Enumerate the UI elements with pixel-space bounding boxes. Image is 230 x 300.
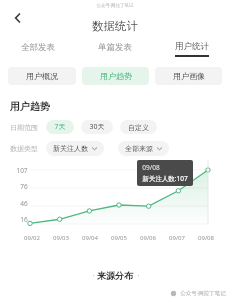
staticText: 全部来源: [125, 144, 153, 153]
button[interactable]: Back: [2, 2, 34, 34]
staticText: 日期范围: [10, 123, 38, 132]
staticText: 新关注人数:107: [142, 174, 188, 183]
button[interactable]: 全部来源: [118, 141, 169, 156]
staticText: ·: [90, 270, 97, 281]
staticText: 09/03: [53, 234, 69, 242]
staticText: 公众号·网拉丁笔记: [96, 2, 134, 8]
staticText: 用户画像: [173, 71, 205, 81]
button[interactable]: 用户趋势: [82, 67, 149, 85]
button[interactable]: 用户统计: [153, 36, 230, 62]
staticText: 16: [20, 215, 28, 224]
staticText: 用户概况: [26, 71, 58, 81]
staticText: 单篇发表: [98, 42, 132, 53]
button[interactable]: 自定义: [120, 120, 157, 134]
button[interactable]: 用户画像: [155, 67, 222, 85]
staticText: 用户统计: [175, 41, 209, 52]
staticText: 107: [16, 166, 28, 175]
staticText: 数据类型: [10, 144, 38, 153]
staticText: 09/04: [82, 234, 98, 242]
staticText: 公众号·网拉丁笔记: [180, 289, 226, 297]
button[interactable]: 全部发表: [0, 36, 76, 62]
staticText: 09/06: [140, 234, 156, 242]
button[interactable]: 单篇发表: [76, 36, 153, 62]
staticText: 09/07: [169, 234, 185, 242]
staticText: 数据统计: [92, 19, 138, 33]
staticText: 76: [20, 182, 28, 191]
staticText: 09/08: [198, 234, 214, 242]
staticText: 09/02: [24, 234, 40, 242]
staticText: 来源分布: [97, 270, 133, 281]
staticText: 用户趋势: [100, 71, 132, 81]
staticText: 09/05: [111, 234, 127, 242]
button[interactable]: 30天: [81, 120, 113, 134]
staticText: 30天: [89, 122, 105, 132]
button[interactable]: 7天: [46, 120, 74, 134]
button[interactable]: 新关注人数: [46, 141, 104, 156]
staticText: ·: [133, 270, 140, 281]
staticText: 自定义: [128, 123, 149, 132]
button[interactable]: 用户概况: [8, 67, 76, 85]
staticText: 09/08: [142, 163, 160, 172]
staticText: 46: [20, 199, 28, 208]
staticText: 7天: [54, 122, 66, 132]
staticText: 新关注人数: [53, 144, 88, 153]
staticText: 用户趋势: [10, 100, 50, 113]
staticText: 全部发表: [21, 42, 55, 53]
